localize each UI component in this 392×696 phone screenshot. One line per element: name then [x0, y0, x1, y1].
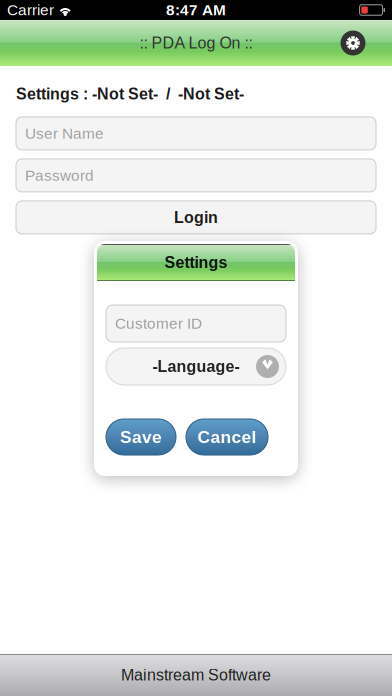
staticText: Carrier	[7, 1, 54, 18]
button[interactable]: Cancel	[186, 419, 268, 455]
staticText: Cancel	[197, 427, 256, 447]
button[interactable]: -Language-	[106, 348, 286, 385]
staticText: User Name	[25, 125, 104, 142]
button[interactable]: Settings	[330, 20, 376, 66]
staticText: -Language-	[152, 358, 239, 375]
staticText: Settings : -Not Set- / -Not Set-	[16, 85, 244, 103]
button[interactable]: Login	[16, 201, 376, 234]
staticText: Customer ID	[115, 315, 202, 332]
staticText: Settings	[164, 254, 227, 271]
staticText: Save	[120, 427, 162, 447]
button[interactable]: Save	[106, 419, 176, 455]
staticText: Login	[174, 208, 218, 226]
staticText: 8:47 AM	[166, 1, 226, 18]
staticText: Mainstream Software	[121, 666, 271, 684]
staticText: Password	[25, 167, 94, 184]
staticText: :: PDA Log On ::	[139, 34, 252, 52]
